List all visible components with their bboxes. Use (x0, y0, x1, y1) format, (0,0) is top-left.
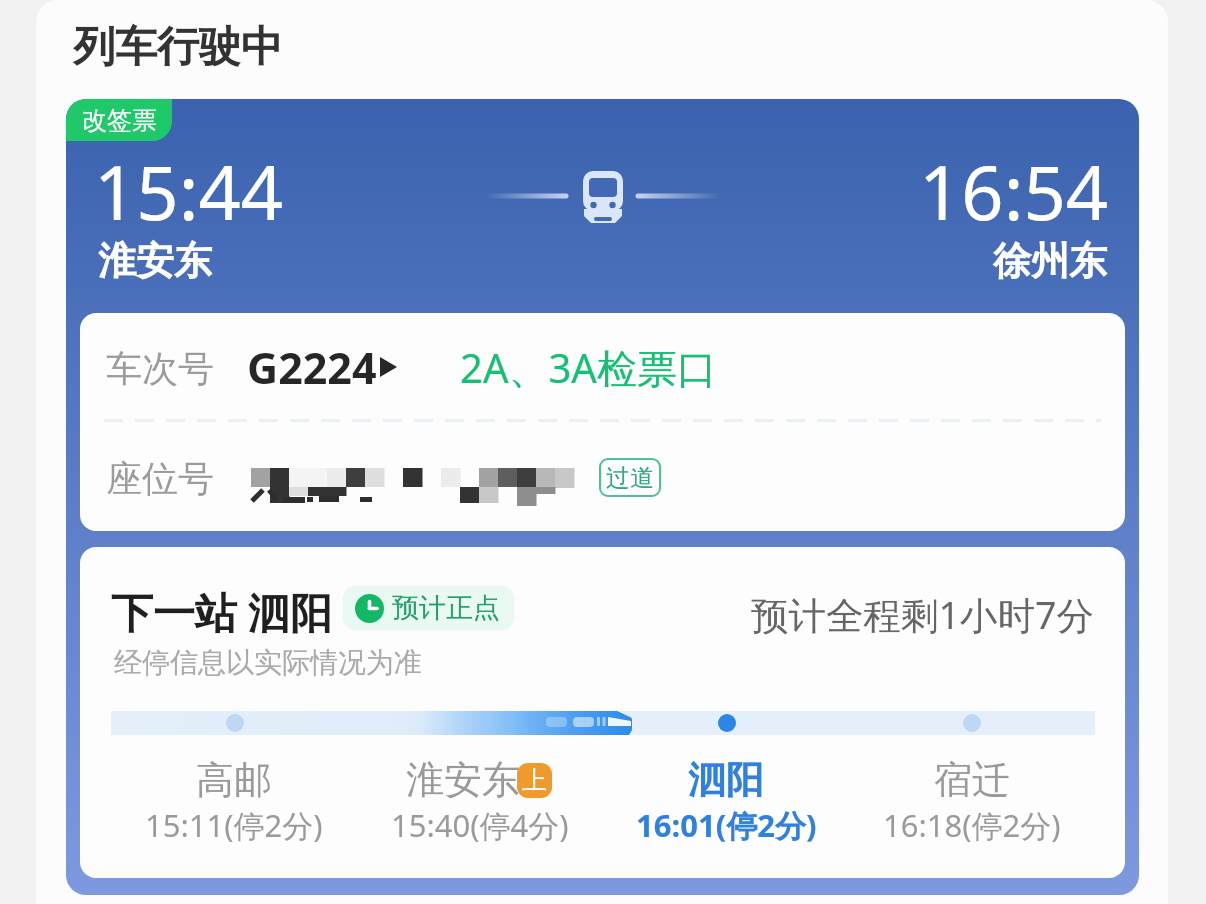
staticText: 2A、3A检票口 (460, 340, 717, 395)
staticText: 淮安东 (406, 756, 520, 804)
staticText: 16:18(停2分) (883, 804, 1061, 846)
staticText: 高邮 (196, 756, 272, 804)
staticText: 宿迁 (934, 756, 1010, 804)
staticText: 改签票 (82, 105, 157, 136)
staticText: 下一站 泗阳 (111, 583, 332, 640)
staticText: 过道 (606, 463, 654, 493)
staticText: 徐州东 (993, 237, 1107, 285)
staticText: 15:44 (94, 141, 284, 242)
staticText: 预计全程剩1小时7分 (751, 589, 1094, 640)
staticText: 泗阳 (688, 756, 764, 804)
button[interactable]: 淮安东 (357, 756, 603, 846)
staticText: 16:01(停2分) (636, 804, 817, 846)
staticText: 15:11(停2分) (145, 804, 323, 846)
staticText: 车次号 (106, 346, 214, 391)
button[interactable]: 高邮 (111, 756, 357, 846)
button[interactable]: 宿迁 (849, 756, 1095, 846)
staticText: 上 (522, 765, 547, 796)
staticText: 淮安东 (98, 237, 212, 285)
staticText: 座位号 (106, 456, 214, 501)
staticText: 15:40(停4分) (391, 804, 569, 846)
button[interactable]: 泗阳 (603, 756, 849, 846)
button[interactable]: 改签票 (66, 99, 172, 141)
staticText: 16:54 (919, 141, 1109, 242)
button[interactable]: 预计正点 (343, 586, 514, 630)
staticText: 经停信息以实际情况为准 (114, 645, 422, 680)
staticText: G2224 (247, 338, 377, 397)
staticText: 列车行驶中 (73, 21, 283, 74)
staticText: 预计正点 (392, 591, 500, 625)
